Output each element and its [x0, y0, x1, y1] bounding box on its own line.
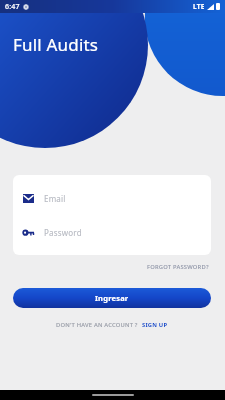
button[interactable]: FORGOT PASSWORD?	[145, 261, 211, 273]
button[interactable]: Password	[13, 215, 211, 249]
other: Email	[19, 189, 37, 207]
button[interactable]: Email	[13, 181, 211, 215]
button[interactable]: Ingresar	[13, 288, 211, 308]
staticText: FORGOT PASSWORD?	[147, 263, 209, 271]
staticText: DON'T HAVE AN ACCOUNT ?	[56, 321, 138, 329]
staticText: Email	[44, 193, 66, 204]
other: Password	[19, 223, 37, 241]
other: Home gesture	[92, 394, 134, 396]
button[interactable]: SIGN UP	[141, 320, 169, 330]
staticText: 6:47	[5, 2, 20, 12]
staticText: Full Audits	[13, 33, 99, 56]
staticText: LTE	[193, 2, 205, 11]
staticText: Ingresar	[95, 293, 129, 303]
staticText: SIGN UP	[142, 321, 168, 329]
staticText: Password	[44, 227, 82, 238]
